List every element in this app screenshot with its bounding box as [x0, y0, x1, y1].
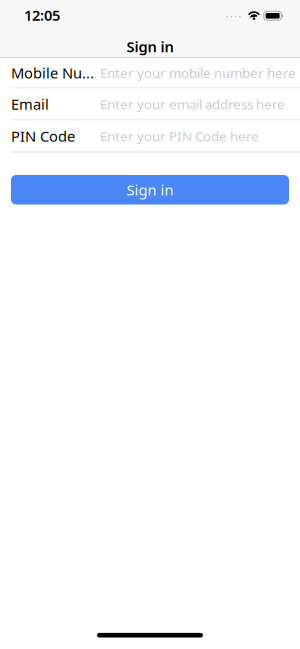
button[interactable]: PIN Code — [0, 120, 300, 151]
staticText: 12:05 — [24, 5, 60, 25]
staticText: Enter your PIN Code here — [100, 127, 259, 145]
staticText: Email — [11, 94, 49, 114]
button[interactable]: Sign in — [11, 175, 289, 204]
staticText: Sign in — [126, 180, 173, 199]
staticText: Enter your mobile number here — [100, 64, 296, 82]
staticText: Enter your email address here — [100, 95, 285, 113]
button[interactable]: Mobile Nu... — [0, 58, 300, 87]
staticText: PIN Code — [11, 126, 75, 146]
staticText: Sign in — [126, 37, 173, 56]
button[interactable]: Email — [0, 88, 300, 119]
staticText: Mobile Nu... — [11, 63, 94, 82]
